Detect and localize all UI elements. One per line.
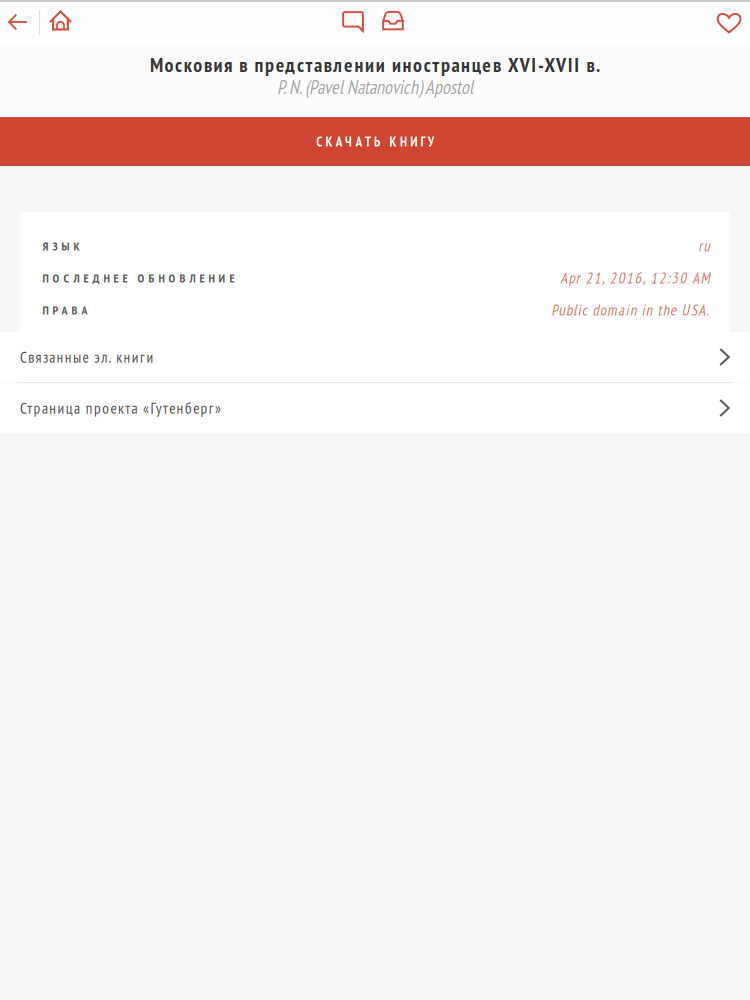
staticText: Public domain in the USA.: [551, 300, 709, 319]
button[interactable]: Связанные эл. книги: [0, 332, 750, 382]
staticText: ru: [698, 236, 709, 255]
staticText: ПРАВА: [42, 302, 87, 318]
button[interactable]: СКАЧАТЬ КНИГУ: [0, 117, 750, 166]
staticText: Московия в представлении иностранцев XVI…: [150, 52, 600, 77]
button[interactable]: Комментарии: [353, 2, 393, 43]
staticText: Связанные эл. книги: [20, 347, 153, 367]
staticText: Apr 21, 2016, 12:30 AM: [560, 268, 709, 287]
staticText: Страница проекта «Гутенберг»: [20, 398, 221, 418]
staticText: ПОСЛЕДНЕЕ ОБНОВЛЕНИЕ: [42, 270, 234, 286]
button[interactable]: Входящие: [393, 2, 433, 43]
button[interactable]: Главная: [36, 2, 79, 43]
button[interactable]: Назад: [0, 2, 35, 43]
button[interactable]: Страница проекта «Гутенберг»: [0, 383, 750, 433]
staticText: P. N. (Pavel Natanovich) Apostol: [277, 75, 473, 99]
staticText: ЯЗЫК: [42, 238, 79, 254]
staticText: СКАЧАТЬ КНИГУ: [316, 133, 434, 150]
button[interactable]: В избранное: [707, 2, 741, 43]
